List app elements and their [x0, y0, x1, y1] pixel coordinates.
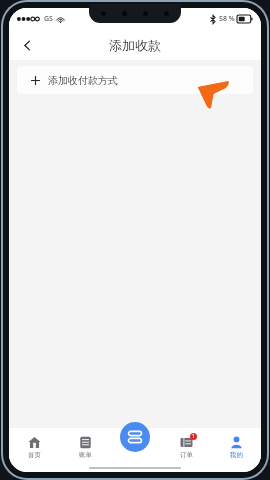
- staticText: 账单: [79, 451, 92, 459]
- staticText: 添加收款: [109, 37, 161, 53]
- staticText: GS: [44, 14, 53, 24]
- button[interactable]: 账单: [60, 428, 111, 466]
- staticText: 首页: [28, 451, 41, 459]
- button[interactable]: Scan transfer: [120, 422, 150, 452]
- staticText: 我的: [230, 451, 243, 459]
- staticText: 1: [192, 433, 195, 440]
- staticText: 58 %: [219, 14, 235, 24]
- button[interactable]: 1: [161, 428, 211, 466]
- staticText: 添加收付款方式: [48, 74, 118, 87]
- button[interactable]: 我的: [211, 428, 261, 466]
- button[interactable]: Back: [13, 31, 41, 59]
- staticText: 订单: [180, 451, 193, 459]
- button[interactable]: 首页: [9, 428, 60, 466]
- button[interactable]: 添加收付款方式: [17, 66, 253, 94]
